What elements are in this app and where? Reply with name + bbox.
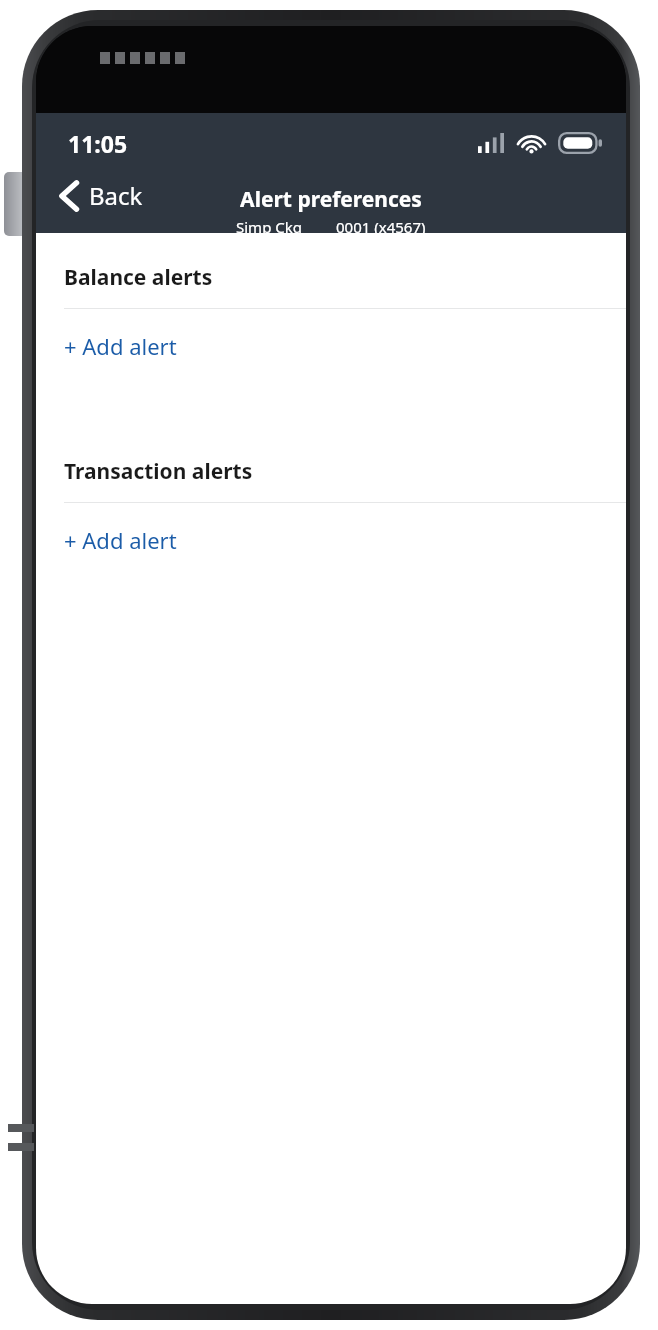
staticText: 0001 (x4567)	[336, 217, 426, 237]
staticText: + Add alert	[64, 525, 177, 555]
staticText: Balance alerts	[64, 263, 213, 292]
button[interactable]: + Add alert	[36, 503, 626, 577]
staticText: Transaction alerts	[64, 457, 253, 486]
staticText: + Add alert	[64, 331, 177, 361]
staticText: Back	[89, 179, 143, 212]
staticText: Alert preferences	[240, 185, 422, 214]
button[interactable]: Back	[50, 171, 153, 220]
button[interactable]: + Add alert	[36, 309, 626, 383]
staticText: Simp Ckg	[236, 217, 302, 237]
staticText: 11:05	[68, 128, 128, 159]
